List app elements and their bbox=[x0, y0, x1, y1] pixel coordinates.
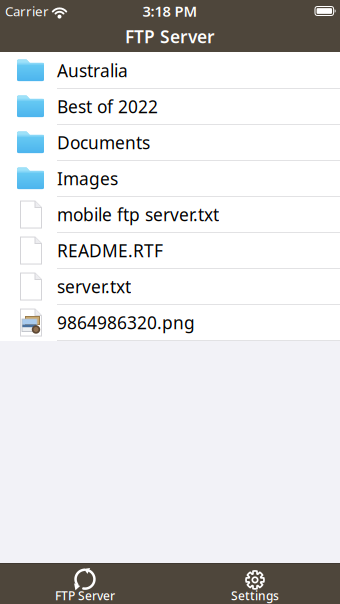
button[interactable]: FTP Server bbox=[0, 568, 170, 601]
button[interactable]: Australia bbox=[0, 53, 340, 89]
button[interactable]: Images bbox=[0, 161, 340, 197]
staticText: Images bbox=[57, 167, 118, 190]
staticText: Documents bbox=[57, 131, 150, 154]
staticText: FTP Server bbox=[55, 588, 115, 604]
button[interactable]: README.RTF bbox=[0, 233, 340, 269]
staticText: server.txt bbox=[57, 275, 131, 298]
staticText: 3:18 PM bbox=[142, 1, 197, 21]
staticText: FTP Server bbox=[125, 25, 215, 48]
button[interactable]: Documents bbox=[0, 125, 340, 161]
button[interactable]: mobile ftp server.txt bbox=[0, 197, 340, 233]
button[interactable]: Best of 2022 bbox=[0, 89, 340, 125]
button[interactable]: Settings bbox=[170, 568, 340, 601]
button[interactable]: server.txt bbox=[0, 269, 340, 305]
staticText: Australia bbox=[57, 59, 128, 82]
staticText: README.RTF bbox=[57, 239, 163, 262]
button[interactable]: 9864986320.png bbox=[0, 305, 340, 341]
staticText: 9864986320.png bbox=[57, 311, 195, 334]
staticText: Carrier bbox=[5, 2, 49, 20]
staticText: Best of 2022 bbox=[57, 95, 158, 118]
staticText: mobile ftp server.txt bbox=[57, 203, 219, 226]
staticText: Settings bbox=[231, 588, 279, 604]
